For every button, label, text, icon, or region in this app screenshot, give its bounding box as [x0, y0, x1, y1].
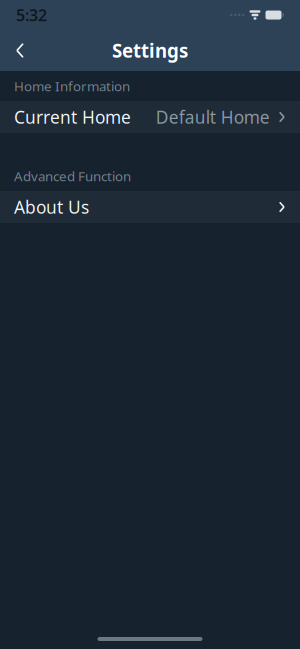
- staticText: Home Information: [14, 77, 130, 95]
- staticText: 5:32: [16, 4, 47, 26]
- staticText: Default Home: [156, 105, 270, 128]
- button[interactable]: Back: [0, 30, 40, 70]
- button[interactable]: About Us: [0, 191, 300, 223]
- staticText: Current Home: [14, 105, 131, 128]
- staticText: Settings: [112, 38, 188, 63]
- staticText: About Us: [14, 195, 89, 218]
- button[interactable]: Current Home: [0, 101, 300, 133]
- staticText: Advanced Function: [14, 167, 131, 185]
